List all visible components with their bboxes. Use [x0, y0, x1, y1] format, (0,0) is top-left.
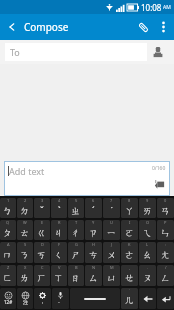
button[interactable]: N	[85, 265, 102, 286]
staticText: 10:08	[141, 2, 162, 13]
staticText: S	[24, 242, 27, 247]
staticText: ,	[129, 265, 131, 270]
staticText: ㄧ	[107, 227, 117, 238]
button[interactable]: /	[157, 265, 174, 286]
button[interactable]: Backspace	[139, 288, 156, 309]
staticText: 0	[164, 198, 167, 203]
staticText: 12#	[4, 299, 13, 305]
button[interactable]: T	[68, 220, 84, 240]
button[interactable]: C	[34, 265, 50, 286]
button[interactable]: Settings	[34, 288, 51, 309]
button[interactable]: E	[34, 220, 50, 240]
staticText: ㄆ	[3, 227, 13, 238]
staticText: ㄟ	[143, 227, 153, 238]
button[interactable]: Space	[70, 288, 120, 309]
staticText: ㄌ	[20, 272, 30, 283]
button[interactable]: ,	[121, 265, 138, 286]
button[interactable]: Back	[0, 14, 24, 40]
button[interactable]: Q	[0, 220, 16, 240]
button[interactable]: S	[17, 242, 33, 263]
button[interactable]: Enter	[157, 288, 174, 309]
button[interactable]: :	[157, 242, 174, 263]
staticText: ㄘ	[89, 249, 99, 260]
button[interactable]: U	[103, 220, 120, 240]
button[interactable]: 2	[17, 198, 33, 218]
button[interactable]: F	[51, 242, 67, 263]
button[interactable]: A	[0, 242, 16, 263]
staticText: To	[10, 46, 20, 58]
staticText: ㄍ	[37, 227, 47, 238]
staticText: ㄜ	[125, 249, 135, 260]
button[interactable]: 1	[0, 198, 16, 218]
staticText: ㄛ	[125, 227, 135, 238]
button[interactable]: .	[139, 265, 156, 286]
staticText: Q	[6, 220, 10, 225]
staticText: H	[92, 242, 95, 247]
staticText: ˇ	[40, 204, 44, 216]
staticText: ㄔ	[71, 227, 81, 238]
button[interactable]: 7	[103, 198, 120, 218]
button[interactable]: O	[139, 220, 156, 240]
button[interactable]: 8	[121, 198, 138, 218]
staticText: ㄥ	[161, 272, 171, 283]
staticText: 。	[58, 299, 63, 305]
staticText: :	[165, 242, 167, 247]
button[interactable]: K	[121, 242, 138, 263]
button[interactable]: L	[139, 242, 156, 263]
staticText: K	[128, 242, 131, 247]
button[interactable]: To	[5, 43, 147, 61]
staticText: /	[165, 265, 167, 270]
staticText: ㄕ	[71, 249, 81, 260]
staticText: ㄨ	[107, 249, 117, 260]
staticText: O	[146, 220, 150, 225]
button[interactable]: Pick contact	[147, 43, 169, 61]
staticText: ㄋ	[20, 249, 30, 260]
button[interactable]: 0	[157, 198, 174, 218]
button[interactable]: Z	[0, 265, 16, 286]
button[interactable]: Attach	[132, 14, 154, 40]
staticText: L	[146, 242, 149, 247]
staticText: G	[75, 242, 78, 247]
button[interactable]: Y	[85, 220, 102, 240]
staticText: J	[111, 242, 113, 247]
staticText: ㄈ	[3, 272, 13, 283]
staticText: W	[23, 220, 27, 225]
staticText: X	[24, 265, 27, 270]
button[interactable]: J	[103, 242, 120, 263]
button[interactable]: Send	[152, 177, 166, 191]
button[interactable]: 4	[51, 198, 67, 218]
staticText: ˙	[111, 204, 113, 216]
button[interactable]: 9	[139, 198, 156, 218]
button[interactable]: V	[51, 265, 67, 286]
button[interactable]: D	[34, 242, 50, 263]
button[interactable]: G	[68, 242, 84, 263]
button[interactable]: M	[103, 265, 120, 286]
staticText: P	[164, 220, 167, 225]
button[interactable]: B	[68, 265, 84, 286]
button[interactable]: X	[17, 265, 33, 286]
staticText: ㄢ	[161, 205, 171, 216]
button[interactable]: 3	[34, 198, 50, 218]
button[interactable]: ˊ	[121, 288, 138, 309]
button[interactable]: W	[17, 220, 33, 240]
button[interactable]: Symbols	[0, 288, 16, 309]
button[interactable]: I	[121, 220, 138, 240]
button[interactable]: 5	[68, 198, 84, 218]
staticText: ㄉ	[20, 205, 30, 216]
staticText: 3	[41, 198, 44, 203]
button[interactable]: P	[157, 220, 174, 240]
button[interactable]: More options	[154, 14, 172, 40]
staticText: Add text	[9, 165, 45, 177]
button[interactable]: Language	[17, 288, 33, 309]
button[interactable]: R	[51, 220, 67, 240]
staticText: M	[110, 265, 114, 270]
staticText: T	[75, 220, 78, 225]
staticText: AM	[163, 4, 171, 11]
staticText: U	[110, 220, 113, 225]
button[interactable]: Add text	[4, 161, 170, 196]
button[interactable]: Voice input	[52, 288, 69, 309]
staticText: Y	[92, 220, 95, 225]
button[interactable]: H	[85, 242, 102, 263]
staticText: ㄐ	[54, 227, 64, 238]
button[interactable]: 6	[85, 198, 102, 218]
